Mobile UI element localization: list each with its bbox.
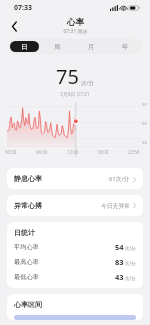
staticText: 3月6日 07:21 — [60, 91, 90, 98]
staticText: 心率区间 — [14, 300, 42, 309]
button[interactable]: 月 — [76, 41, 106, 52]
button[interactable]: 返回 — [6, 18, 22, 34]
staticText: 次/分 — [81, 79, 95, 87]
staticText: 平均心率 — [14, 243, 39, 251]
staticText: 61次/分 — [109, 175, 130, 183]
staticText: 周 — [54, 43, 61, 51]
button[interactable]: 年 — [110, 41, 140, 52]
staticText: 75 — [56, 63, 79, 90]
staticText: 日统计 — [14, 228, 35, 237]
staticText: 今日无异常 — [101, 202, 130, 209]
staticText: 90 — [142, 102, 147, 108]
staticText: 12:00 — [67, 149, 79, 155]
staticText: 日 — [21, 43, 28, 51]
staticText: 07:33 — [14, 3, 32, 13]
staticText: 07:31 同步 — [63, 28, 88, 35]
button[interactable]: 周 — [43, 41, 72, 52]
button[interactable]: 日统计 — [7, 222, 143, 288]
staticText: 06:00 — [36, 149, 48, 155]
staticText: 54 — [115, 242, 124, 252]
button[interactable]: 日 — [10, 41, 39, 52]
button[interactable]: 静息心率 — [7, 168, 143, 189]
staticText: 23:59 — [128, 149, 140, 155]
staticText: 00:00 — [5, 149, 17, 155]
staticText: 静息心率 — [14, 174, 42, 183]
staticText: 次/分 — [125, 260, 136, 266]
staticText: 异常心搏 — [14, 201, 42, 210]
staticText: 18:00 — [97, 149, 109, 155]
button[interactable]: 心率区间 — [7, 294, 143, 320]
staticText: 次/分 — [125, 275, 136, 281]
staticText: 最高心率 — [14, 258, 39, 266]
staticText: 心率 — [67, 17, 84, 28]
staticText: 年 — [122, 43, 129, 51]
staticText: 83 — [115, 257, 124, 267]
staticText: 最低心率 — [14, 273, 39, 281]
staticText: 60 — [142, 121, 147, 127]
staticText: 43 — [115, 272, 124, 282]
staticText: 月 — [88, 43, 95, 51]
button[interactable]: 异常心搏 — [7, 195, 143, 216]
staticText: 次/分 — [125, 245, 136, 251]
staticText: 30 — [142, 140, 147, 146]
